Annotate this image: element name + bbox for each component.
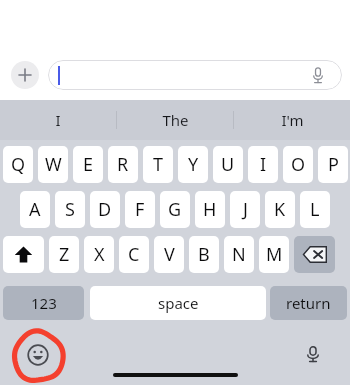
button[interactable]: K [265, 191, 295, 228]
button[interactable]: Add attachment [11, 61, 39, 89]
staticText: Y [188, 152, 199, 177]
staticText: H [203, 197, 217, 222]
staticText: L [310, 197, 320, 222]
staticText: I [260, 152, 267, 177]
staticText: I [55, 110, 61, 130]
staticText: W [45, 152, 62, 177]
button[interactable]: R [108, 146, 138, 183]
button[interactable]: W [38, 146, 68, 183]
staticText: space [158, 293, 199, 313]
button[interactable]: The [117, 100, 233, 140]
button[interactable]: H [195, 191, 225, 228]
button[interactable]: I'm [234, 100, 350, 140]
button[interactable]: Dictate [308, 65, 328, 85]
button[interactable]: 123 [3, 286, 84, 320]
staticText: D [98, 197, 112, 222]
button[interactable]: U [213, 146, 243, 183]
staticText: S [65, 197, 75, 222]
staticText: V [164, 242, 175, 267]
button[interactable]: Z [49, 236, 79, 273]
button[interactable]: M [259, 236, 289, 273]
staticText: O [291, 152, 306, 177]
button[interactable]: C [119, 236, 149, 273]
staticText: K [274, 197, 286, 222]
staticText: E [83, 152, 94, 177]
button[interactable]: S [55, 191, 85, 228]
button[interactable]: Y [178, 146, 208, 183]
staticText: T [153, 152, 164, 177]
button[interactable]: Voice input [299, 340, 327, 368]
button[interactable]: L [300, 191, 330, 228]
button[interactable]: return [270, 286, 347, 320]
button[interactable]: N [224, 236, 254, 273]
staticText: R [117, 152, 129, 177]
button[interactable]: I [248, 146, 278, 183]
staticText: The [162, 110, 189, 130]
button[interactable]: F [125, 191, 155, 228]
staticText: I'm [281, 110, 304, 130]
staticText: U [221, 152, 235, 177]
staticText: Q [11, 152, 26, 177]
staticText: Z [59, 242, 70, 267]
staticText: F [135, 197, 145, 222]
button[interactable]: G [160, 191, 190, 228]
staticText: M [266, 242, 283, 267]
button[interactable]: Emoji keyboard [24, 341, 52, 369]
staticText: B [198, 242, 210, 267]
button[interactable]: E [73, 146, 103, 183]
button[interactable]: P [318, 146, 348, 183]
button[interactable]: space [90, 286, 266, 320]
button[interactable]: J [230, 191, 260, 228]
staticText: P [328, 152, 339, 177]
staticText: X [94, 242, 105, 267]
button[interactable]: A [20, 191, 50, 228]
button[interactable]: Backspace [294, 236, 335, 273]
staticText: J [243, 197, 248, 222]
staticText: G [168, 197, 182, 222]
staticText: 123 [31, 293, 57, 313]
staticText: C [128, 242, 140, 267]
button[interactable]: Dictate [48, 60, 342, 90]
staticText: N [232, 242, 246, 267]
button[interactable]: Q [3, 146, 33, 183]
button[interactable]: Shift [3, 236, 44, 273]
button[interactable]: T [143, 146, 173, 183]
button[interactable]: X [84, 236, 114, 273]
button[interactable]: I [0, 100, 116, 140]
staticText: A [29, 197, 41, 222]
button[interactable]: O [283, 146, 313, 183]
button[interactable]: D [90, 191, 120, 228]
button[interactable]: B [189, 236, 219, 273]
staticText: return [286, 293, 331, 313]
button[interactable]: V [154, 236, 184, 273]
